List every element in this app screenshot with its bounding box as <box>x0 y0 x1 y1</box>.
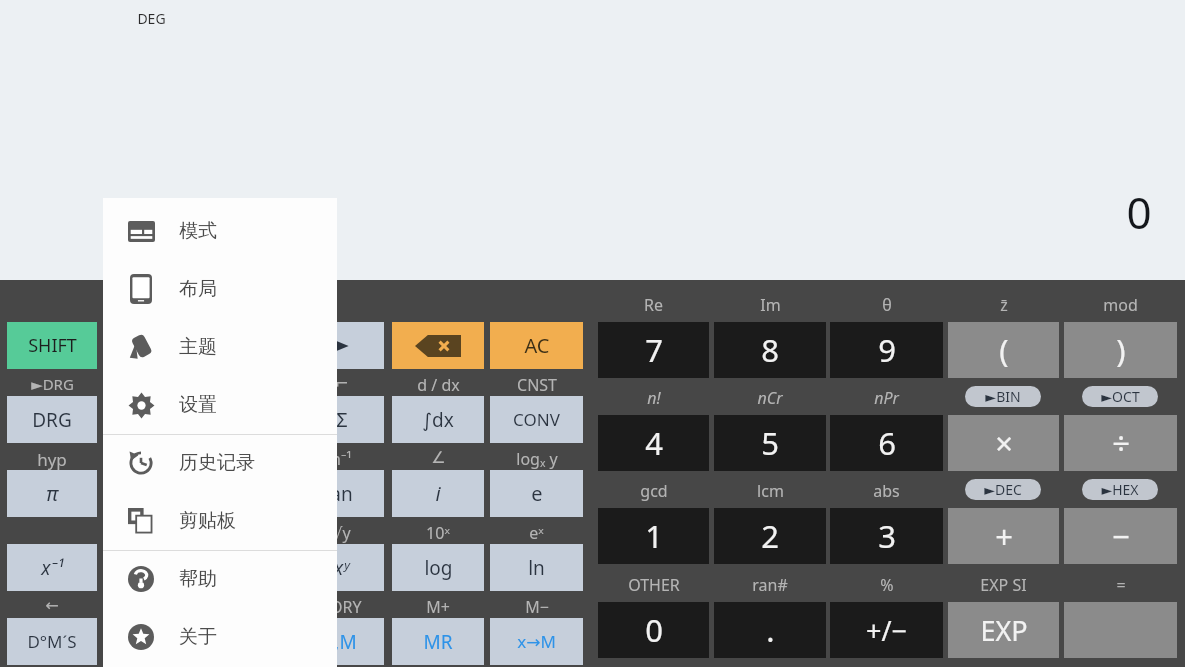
button[interactable]: ►BIN <box>965 386 1041 407</box>
button[interactable]: 剪贴板 <box>103 499 337 543</box>
button[interactable]: x→M <box>490 618 583 665</box>
staticText: log <box>424 555 453 581</box>
button[interactable]: 8 <box>714 322 826 378</box>
staticText: 历史记录 <box>179 451 255 475</box>
staticText: . <box>766 609 775 651</box>
button[interactable]: SHIFT <box>7 322 97 369</box>
button[interactable]: i <box>392 470 484 517</box>
button[interactable]: 帮助 <box>103 557 337 601</box>
staticText: ) <box>1116 329 1126 371</box>
button[interactable]: 历史记录 <box>103 441 337 485</box>
staticText: 0 <box>1126 182 1152 242</box>
button[interactable]: 0 <box>598 602 709 658</box>
staticText: CONV <box>513 408 560 431</box>
staticText: ∫dx <box>422 407 454 433</box>
staticText: i <box>435 480 441 507</box>
staticText: 2 <box>761 515 779 557</box>
staticText: ln <box>528 555 545 581</box>
button[interactable]: 9 <box>830 322 943 378</box>
staticText: 剪贴板 <box>179 509 236 533</box>
staticText: ►HEX <box>1101 480 1139 499</box>
button[interactable]: ►OCT <box>1082 386 1158 407</box>
button[interactable]: x⁻¹ <box>7 544 97 591</box>
button[interactable]: 2 <box>714 508 826 564</box>
button[interactable]: ( <box>948 322 1059 378</box>
staticText: d / dx <box>417 374 460 396</box>
button[interactable]: +/− <box>830 602 943 658</box>
staticText: D°M´S <box>27 630 77 653</box>
staticText: M− <box>525 596 549 618</box>
staticText: x→M <box>517 630 556 653</box>
button[interactable]: × <box>948 415 1059 471</box>
button[interactable]: 模式 <box>103 209 337 253</box>
staticText: 设置 <box>179 393 217 417</box>
button[interactable]: 1 <box>598 508 709 564</box>
staticText: % <box>880 574 894 596</box>
staticText: 9 <box>878 329 896 371</box>
staticText: gcd <box>640 480 668 502</box>
button[interactable]: ) <box>1064 322 1177 378</box>
button[interactable]: 6 <box>830 415 943 471</box>
staticText: hyp <box>37 448 67 471</box>
button[interactable]: 关于 <box>103 615 337 659</box>
button[interactable]: Backspace <box>392 322 484 369</box>
staticText: 3 <box>878 515 896 557</box>
staticText: = <box>1116 574 1126 596</box>
button[interactable]: Σ <box>299 396 384 443</box>
staticText: 布局 <box>179 277 217 301</box>
staticText: lcm <box>757 480 784 502</box>
staticText: ►OCT <box>1101 387 1140 406</box>
button[interactable]: /,M <box>299 618 384 665</box>
staticText: DRG <box>32 407 72 433</box>
button[interactable]: 5 <box>714 415 826 471</box>
button[interactable]: ►HEX <box>1082 479 1158 500</box>
staticText: − <box>1112 515 1130 557</box>
button[interactable]: − <box>1064 508 1177 564</box>
button[interactable]: ln <box>490 544 583 591</box>
button[interactable]: 设置 <box>103 383 337 427</box>
button[interactable]: AC <box>490 322 583 369</box>
button[interactable]: 主题 <box>103 325 337 369</box>
staticText: n! <box>647 387 661 409</box>
button[interactable]: . <box>714 602 826 658</box>
button[interactable]: xʸ <box>299 544 384 591</box>
staticText: AC <box>524 332 550 359</box>
staticText: ⌐ <box>335 374 349 393</box>
button[interactable]: log <box>392 544 484 591</box>
staticText: 6 <box>878 422 896 464</box>
button[interactable]: D°M´S <box>7 618 97 665</box>
staticText: ►BIN <box>985 387 1021 406</box>
button[interactable]: 7 <box>598 322 709 378</box>
staticText: 模式 <box>179 219 217 243</box>
button[interactable]: 4 <box>598 415 709 471</box>
staticText: +/− <box>866 612 907 649</box>
staticText: 主题 <box>179 335 217 359</box>
button[interactable]: 布局 <box>103 267 337 311</box>
button[interactable]: an <box>299 470 384 517</box>
staticText: ÷ <box>1112 422 1130 464</box>
button[interactable]: EXP <box>948 602 1059 658</box>
staticText: ( <box>999 329 1009 371</box>
button[interactable]: DRG <box>7 396 97 443</box>
button[interactable]: e <box>490 470 583 517</box>
button[interactable]: MR <box>392 618 484 665</box>
button[interactable]: ∫dx <box>392 396 484 443</box>
staticText: TORY <box>321 596 362 618</box>
button[interactable]: ÷ <box>1064 415 1177 471</box>
staticText: eˣ <box>529 522 544 544</box>
staticText: Im <box>760 294 781 316</box>
staticText: Re <box>644 294 663 316</box>
button[interactable]: ►DEC <box>965 479 1041 500</box>
button[interactable]: π <box>7 470 97 517</box>
button[interactable]: 3 <box>830 508 943 564</box>
button[interactable]: Right <box>299 322 384 369</box>
button[interactable]: + <box>948 508 1059 564</box>
staticText: × <box>995 422 1013 464</box>
staticText: nCr <box>757 387 783 409</box>
staticText: OTHER <box>628 574 680 596</box>
staticText: M+ <box>426 596 450 618</box>
button[interactable]: CONV <box>490 396 583 443</box>
staticText: xʸ <box>334 555 349 581</box>
staticText: logₓ y <box>516 448 558 470</box>
